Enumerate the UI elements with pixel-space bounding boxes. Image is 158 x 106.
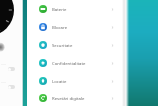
other: Open Confidentialitate xyxy=(110,61,115,66)
other: Open Securitate xyxy=(110,43,115,48)
button[interactable]: Back xyxy=(0,43,4,51)
button[interactable]: Confidentialitate xyxy=(27,54,124,72)
staticText: Blocare xyxy=(52,24,68,30)
other: Open Resetări digitale xyxy=(110,96,115,101)
button[interactable]: Locatie xyxy=(27,72,124,90)
button[interactable]: Securitate xyxy=(27,36,124,54)
button[interactable]: Toggle xyxy=(8,85,15,89)
button[interactable]: Toggle xyxy=(8,67,15,71)
staticText: Securitate xyxy=(52,42,73,48)
button[interactable]: Baterie xyxy=(27,0,124,18)
staticText: Locatie xyxy=(52,78,67,84)
staticText: Resetări digitale xyxy=(52,95,85,101)
other: Open Blocare xyxy=(110,25,115,30)
button[interactable]: Blocare xyxy=(27,18,124,36)
staticText: Baterie xyxy=(52,6,67,12)
other: Open Baterie xyxy=(110,7,115,12)
other: Open Locatie xyxy=(110,79,115,84)
staticText: Confidentialitate xyxy=(52,60,86,66)
button[interactable]: Resetări digitale xyxy=(27,90,124,106)
